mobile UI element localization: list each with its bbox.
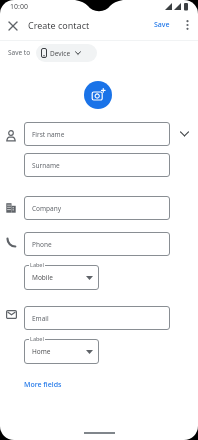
button[interactable] xyxy=(4,17,21,34)
button[interactable]: Phone xyxy=(24,232,170,256)
button[interactable]: More fields xyxy=(24,380,62,390)
button[interactable]: Mobile xyxy=(24,265,99,290)
staticText: Home xyxy=(32,347,51,356)
staticText: Save xyxy=(154,20,170,30)
staticText: First name xyxy=(32,130,65,139)
button[interactable]: Surname xyxy=(24,153,170,177)
staticText: Company xyxy=(32,204,62,213)
button[interactable] xyxy=(180,16,194,34)
button[interactable]: Device xyxy=(36,44,97,62)
staticText: Surname xyxy=(32,161,60,170)
staticText: Email xyxy=(32,314,49,323)
staticText: Label xyxy=(30,335,44,342)
staticText: More fields xyxy=(24,380,62,390)
button[interactable]: Company xyxy=(24,196,170,220)
button[interactable]: First name xyxy=(24,122,170,146)
staticText: Phone xyxy=(32,240,52,249)
staticText: 10:00 xyxy=(10,2,28,12)
staticText: Create contact xyxy=(28,19,90,31)
staticText: Save to xyxy=(8,48,31,57)
button[interactable]: Home xyxy=(24,339,99,364)
staticText: Device xyxy=(50,49,71,58)
button[interactable]: Email xyxy=(24,306,170,330)
staticText: Label xyxy=(30,261,44,268)
button[interactable]: Save xyxy=(148,16,176,34)
button[interactable] xyxy=(84,81,112,109)
staticText: Mobile xyxy=(32,273,53,282)
